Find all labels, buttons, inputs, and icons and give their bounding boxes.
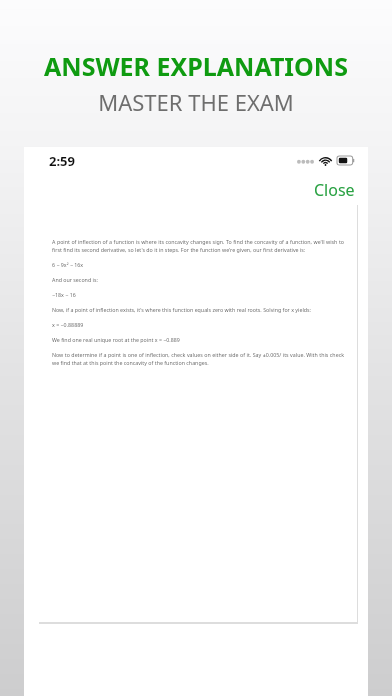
other: Battery	[337, 156, 355, 165]
staticText: Now to determine if a point is one of in…	[52, 351, 344, 366]
staticText: MASTER THE EXAM	[0, 87, 392, 117]
staticText: We find one real unique root at the poin…	[52, 336, 344, 343]
staticText: x = −0.88889	[52, 321, 344, 328]
staticText: And our second is:	[52, 276, 344, 283]
staticText: 6 − 9x² − 16x	[52, 261, 344, 268]
staticText: A point of inflection of a function is w…	[52, 238, 344, 253]
other: Cellular signal	[297, 157, 314, 164]
staticText: Now, if a point of inflection exists, it…	[52, 306, 344, 313]
staticText: −18x − 16	[52, 291, 344, 298]
staticText: Close	[314, 179, 355, 198]
staticText: 2:59	[49, 152, 75, 170]
other: Wi-Fi	[319, 156, 332, 166]
staticText: ANSWER EXPLANATIONS	[0, 49, 392, 83]
button[interactable]: Close	[301, 174, 368, 203]
